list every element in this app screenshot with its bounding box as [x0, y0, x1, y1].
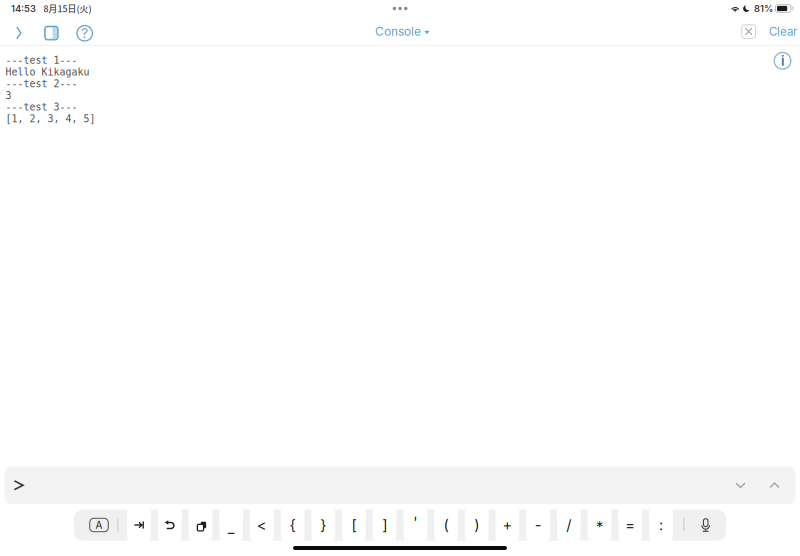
button[interactable]: } [311, 509, 335, 541]
staticText: ] [382, 516, 387, 534]
staticText: + [502, 516, 512, 534]
button[interactable]: ' [404, 509, 427, 541]
button[interactable]: Close console [737, 17, 761, 46]
button[interactable]: ] [373, 509, 396, 541]
button[interactable]: Paste [189, 509, 212, 541]
button[interactable]: * [588, 509, 611, 541]
staticText: / [566, 516, 571, 534]
staticText: - [535, 516, 542, 534]
staticText: A [95, 519, 102, 531]
staticText: { [290, 516, 296, 534]
staticText: [1, 2, 3, 4, 5] [6, 113, 96, 125]
staticText: ( [443, 516, 448, 534]
staticText: } [320, 516, 326, 534]
button[interactable]: Tab [127, 509, 151, 541]
staticText: 14:53 [11, 3, 36, 14]
staticText: 81% [754, 3, 773, 14]
staticText: 8月15日(火) [43, 2, 91, 15]
button[interactable]: Autocomplete [84, 509, 114, 540]
staticText: [ [351, 516, 356, 534]
button[interactable]: Console [369, 17, 435, 46]
button[interactable]: Help [72, 19, 98, 48]
staticText: < [257, 516, 267, 534]
button[interactable]: Show editor [6, 18, 32, 47]
staticText: Clear [769, 25, 797, 38]
button[interactable]: [ [342, 509, 366, 541]
button[interactable]: Dictation [693, 509, 719, 540]
button[interactable]: < [250, 509, 274, 541]
button[interactable]: - [526, 509, 550, 541]
staticText: i [781, 53, 784, 69]
button[interactable]: Scroll up [757, 467, 791, 504]
button[interactable]: Undo [158, 509, 181, 541]
staticText: * [596, 518, 603, 536]
button[interactable]: = [618, 509, 642, 541]
staticText: ---test 3--- [6, 101, 78, 113]
staticText: : [659, 516, 663, 534]
staticText: ' [413, 514, 417, 531]
button[interactable]: + [496, 509, 519, 541]
staticText: ---test 2--- [6, 78, 78, 90]
button[interactable]: ) [465, 509, 488, 541]
staticText: = [625, 516, 635, 534]
staticText: 3 [6, 90, 12, 101]
staticText: ---test 1--- [6, 55, 78, 66]
staticText: ) [474, 516, 479, 534]
staticText: Hello Kikagaku [6, 66, 90, 78]
button[interactable]: Clear [765, 17, 800, 46]
button[interactable]: Toggle sidebar [38, 19, 64, 48]
button[interactable]: Information [769, 48, 795, 74]
button[interactable]: ( [434, 509, 458, 541]
button[interactable]: { [281, 509, 304, 541]
staticText: _ [228, 519, 235, 536]
button[interactable]: _ [219, 509, 243, 541]
button[interactable]: Scroll down [723, 467, 757, 504]
button[interactable]: / [557, 509, 581, 541]
staticText: Console [375, 24, 421, 39]
staticText: ? [81, 25, 88, 41]
button[interactable]: : [649, 509, 673, 541]
